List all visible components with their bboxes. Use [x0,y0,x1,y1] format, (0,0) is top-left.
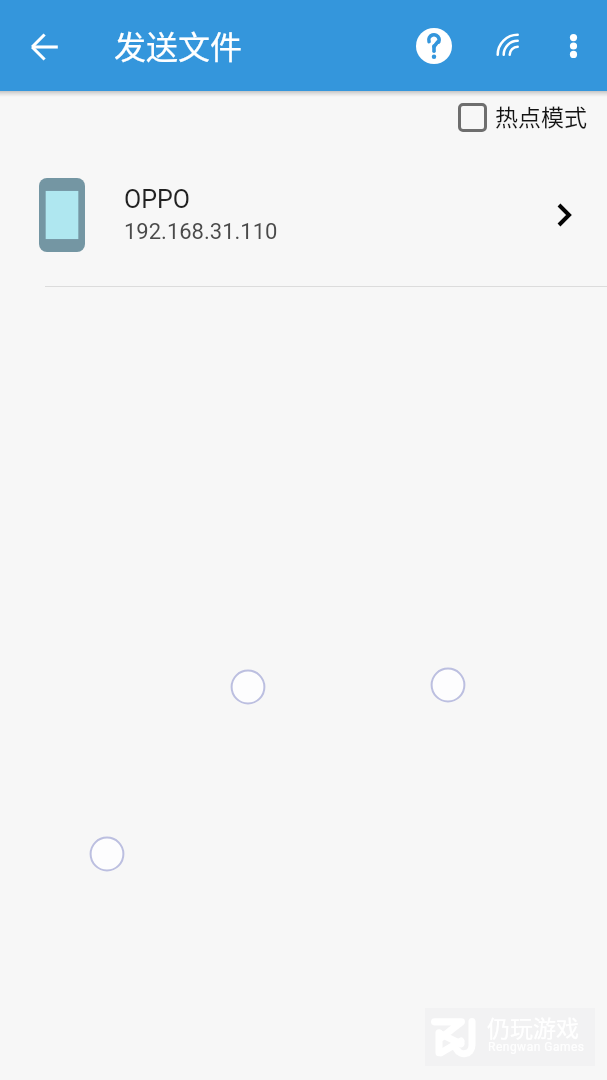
staticText: 192.168.31.110 [124,219,278,245]
staticText: Rengwan Games [488,1040,585,1054]
button[interactable]: Help [410,22,458,70]
button[interactable]: OPPO [0,167,607,262]
button[interactable]: 热点模式 [450,91,601,137]
button[interactable]: More options [549,22,597,70]
button[interactable]: Wireless [483,20,531,68]
staticText: 热点模式 [495,99,587,132]
staticText: OPPO [124,185,190,214]
staticText: 仍玩游戏 [487,1010,579,1043]
button[interactable]: Back [20,23,68,71]
staticText: 发送文件 [114,22,243,68]
